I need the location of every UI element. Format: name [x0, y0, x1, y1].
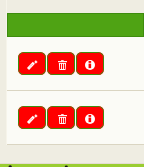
button[interactable] — [7, 13, 144, 37]
button[interactable]: Edit — [18, 52, 46, 75]
button[interactable]: Delete — [47, 106, 75, 129]
button[interactable]: Info — [76, 106, 104, 129]
button[interactable]: Delete — [47, 52, 75, 75]
button[interactable]: Edit — [18, 106, 46, 129]
button[interactable]: Info — [76, 52, 104, 75]
